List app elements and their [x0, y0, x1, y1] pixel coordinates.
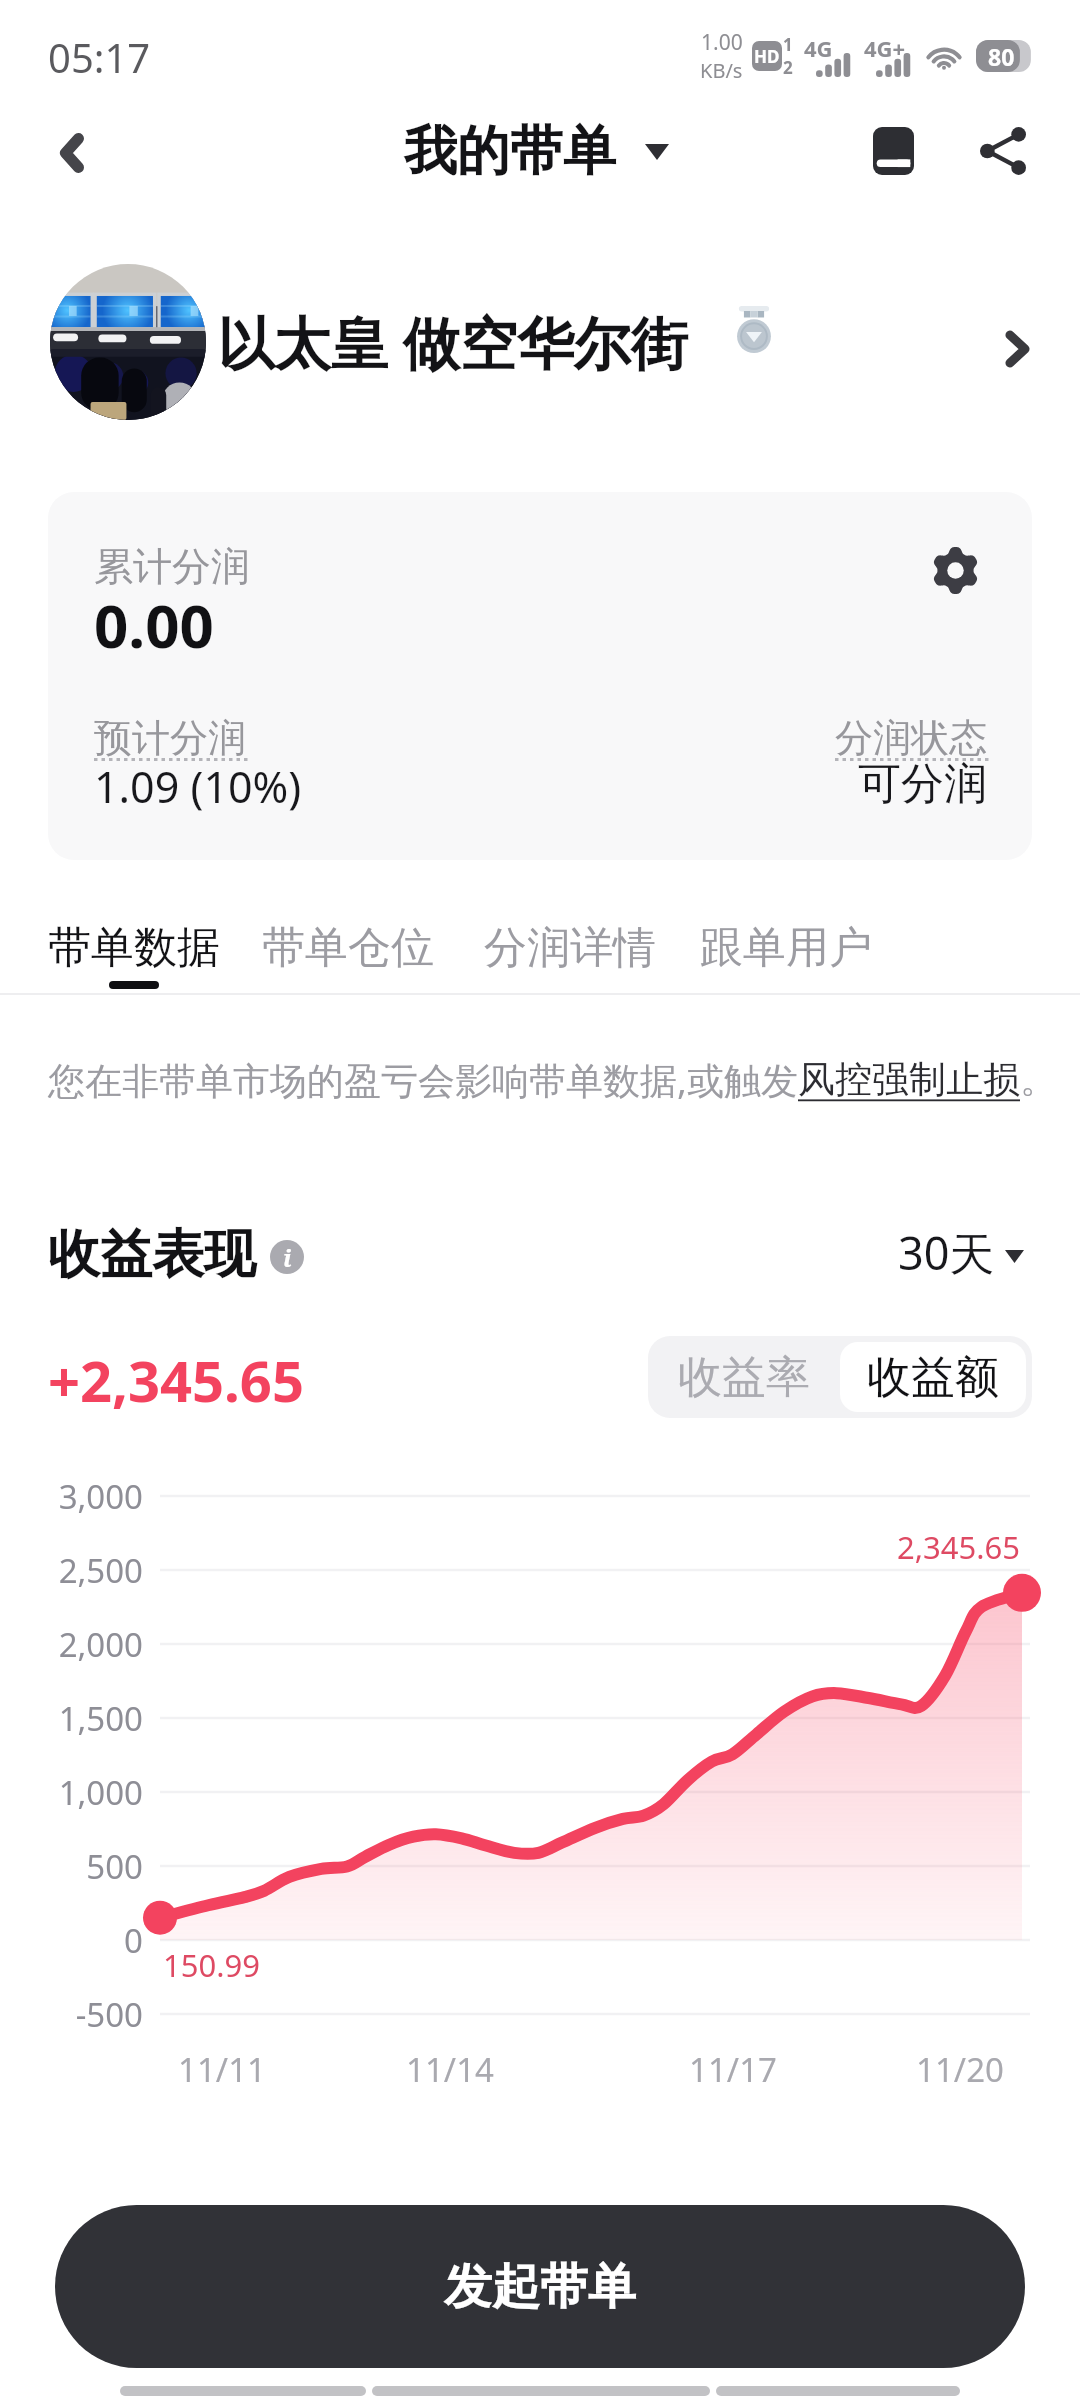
button[interactable]: 带单数据	[48, 921, 220, 989]
button[interactable]: Notes	[843, 101, 943, 201]
staticText: 0	[20, 1918, 143, 1963]
staticText: 2,000	[20, 1622, 143, 1667]
button[interactable]: 收益率	[648, 1336, 840, 1418]
button[interactable]: 分润详情	[484, 921, 656, 989]
button[interactable]: 累计分润	[48, 492, 1032, 860]
staticText: 跟单用户	[700, 921, 872, 975]
button[interactable]: Share	[953, 101, 1053, 201]
staticText: 1.09 (10%)	[94, 757, 302, 816]
staticText: 11/20	[890, 2047, 1030, 2092]
staticText: -500	[20, 1992, 143, 2037]
staticText: 您在非带单市场的盈亏会影响带单数据,或触发	[48, 1054, 798, 1105]
staticText: 1,500	[20, 1696, 143, 1741]
staticText: 我的带单	[404, 118, 616, 185]
staticText: 。	[1020, 1056, 1057, 1103]
staticText: 0.00	[94, 584, 214, 666]
staticText: 分润详情	[484, 921, 656, 975]
staticText: +2,345.65	[48, 1342, 304, 1418]
staticText: 05:17	[48, 30, 151, 84]
staticText: 发起带单	[444, 2257, 636, 2317]
staticText: 带单数据	[48, 921, 220, 975]
staticText: 150.99	[163, 1944, 260, 1986]
button[interactable]: 我的带单	[398, 112, 675, 191]
staticText: 2,500	[20, 1548, 143, 1593]
staticText: 可分润	[648, 757, 987, 811]
staticText: 以太皇 做空华尔街	[217, 303, 688, 381]
button[interactable]: 风控强制止损	[798, 1056, 1020, 1103]
button[interactable]: Settings	[908, 523, 1002, 617]
button[interactable]: 带单仓位	[262, 921, 434, 989]
button[interactable]: Back	[20, 103, 124, 203]
staticText: 2	[783, 56, 793, 79]
button[interactable]: 以太皇 做空华尔街	[0, 248, 1080, 436]
staticText: 预计分润	[94, 714, 246, 762]
staticText: KB/s	[700, 57, 743, 84]
staticText: 11/11	[152, 2047, 292, 2092]
staticText: 2,345.65	[760, 1526, 1020, 1568]
button[interactable]: 收益额	[840, 1342, 1026, 1412]
staticText: 收益表现	[48, 1222, 256, 1288]
staticText: 11/17	[663, 2047, 803, 2092]
staticText: 4G+	[864, 33, 906, 63]
staticText: 1.00	[701, 28, 743, 57]
staticText: i	[283, 1241, 292, 1274]
staticText: 11/14	[380, 2047, 520, 2092]
staticText: 3,000	[20, 1474, 143, 1519]
button[interactable]: 跟单用户	[700, 921, 872, 989]
staticText: 带单仓位	[262, 921, 434, 975]
staticText: 收益率	[678, 1350, 810, 1405]
staticText: HD	[754, 45, 780, 68]
staticText: 500	[20, 1844, 143, 1889]
staticText: 累计分润	[94, 542, 250, 591]
staticText: 分润状态	[648, 714, 987, 762]
button[interactable]: 发起带单	[55, 2205, 1025, 2368]
button[interactable]: 30天	[894, 1218, 1028, 1287]
staticText: 收益额	[867, 1350, 999, 1405]
staticText: 1	[783, 33, 793, 56]
staticText: 1,000	[20, 1770, 143, 1815]
button[interactable]: Info	[270, 1240, 304, 1274]
staticText: 80	[988, 41, 1015, 72]
staticText: 30天	[898, 1222, 995, 1283]
staticText: 4G	[804, 33, 833, 63]
